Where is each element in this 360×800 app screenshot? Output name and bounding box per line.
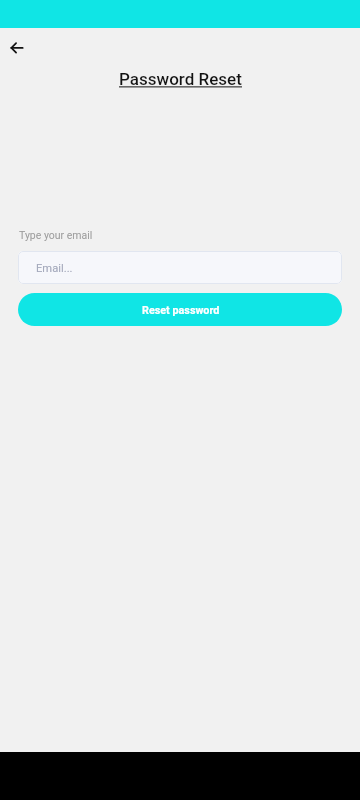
staticText: Email...: [36, 262, 73, 275]
staticText: Reset password: [142, 304, 220, 317]
button[interactable]: Email...: [18, 251, 342, 284]
button[interactable]: Back: [4, 35, 30, 61]
button[interactable]: Reset password: [18, 293, 342, 326]
staticText: Password Reset: [119, 69, 242, 89]
staticText: Type your email: [19, 229, 93, 241]
